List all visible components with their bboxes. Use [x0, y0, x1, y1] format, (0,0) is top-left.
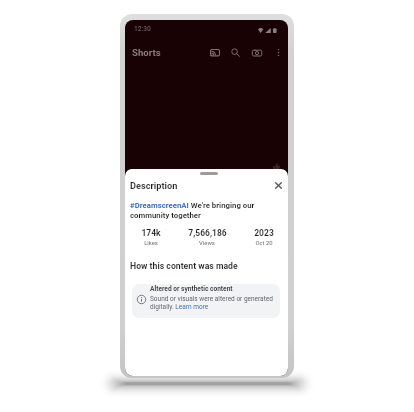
button[interactable]: Search: [228, 45, 243, 60]
staticText: 2023: [254, 228, 274, 238]
button[interactable]: Camera: [249, 45, 264, 60]
staticText: Description: [130, 180, 178, 191]
staticText: 7,566,186: [188, 228, 227, 238]
staticText: Likes: [144, 240, 158, 247]
button[interactable]: Altered or synthetic content: [132, 284, 280, 318]
button[interactable]: Cast: [207, 45, 222, 60]
button[interactable]: More options: [271, 45, 286, 60]
staticText: How this content was made: [130, 261, 238, 271]
staticText: Views: [199, 240, 215, 247]
staticText: #DreamscreenAI We're bringing our commun…: [130, 201, 278, 220]
staticText: Altered or synthetic content: [150, 285, 233, 293]
staticText: 12:30: [134, 25, 151, 33]
staticText: 174k: [141, 228, 161, 238]
button[interactable]: Close: [271, 178, 286, 193]
staticText: Sound or visuals were altered or generat…: [150, 295, 274, 311]
staticText: Oct 20: [255, 240, 273, 247]
staticText: Shorts: [132, 47, 161, 58]
